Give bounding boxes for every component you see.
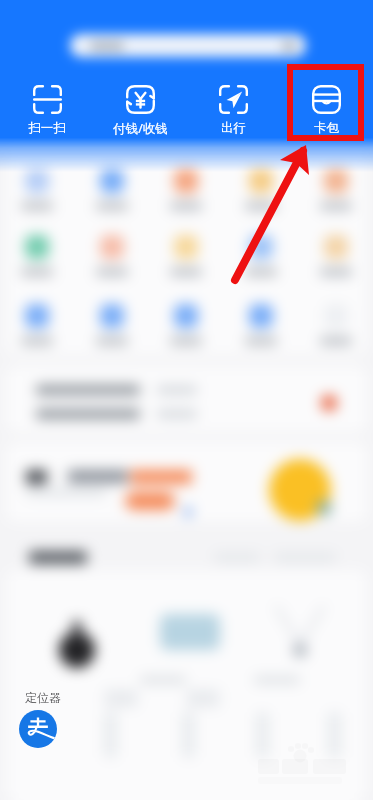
button[interactable]: 付钱/收钱 xyxy=(94,85,187,137)
staticText: 扫一扫 xyxy=(28,120,66,136)
button[interactable]: 出行 xyxy=(187,85,280,136)
button[interactable]: 卡包 xyxy=(280,85,373,136)
button[interactable]: Alipay xyxy=(19,710,57,748)
staticText: 付钱/收钱 xyxy=(113,120,168,137)
staticText: 卡包 xyxy=(314,120,339,136)
button[interactable]: 扫一扫 xyxy=(0,85,94,136)
staticText: 定位器 xyxy=(25,690,61,705)
button[interactable] xyxy=(70,34,306,57)
staticText: 出行 xyxy=(221,120,246,136)
